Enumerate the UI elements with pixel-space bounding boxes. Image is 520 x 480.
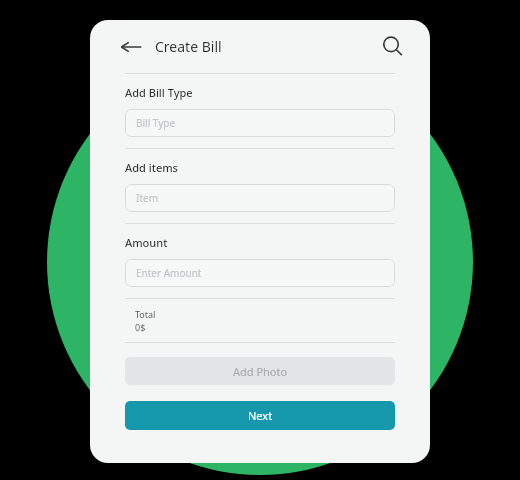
staticText: Add items xyxy=(125,160,178,175)
staticText: Amount xyxy=(125,235,168,250)
staticText: Add Photo xyxy=(233,364,288,379)
button[interactable]: Add Photo xyxy=(125,357,395,385)
button[interactable]: Item xyxy=(125,184,395,212)
button[interactable]: Next xyxy=(125,401,395,430)
button[interactable]: Search xyxy=(378,32,408,62)
staticText: Enter Amount xyxy=(136,266,202,280)
staticText: Create Bill xyxy=(155,37,222,56)
staticText: Total xyxy=(135,308,156,320)
staticText: Next xyxy=(248,408,273,423)
staticText: Bill Type xyxy=(136,116,176,130)
button[interactable]: Enter Amount xyxy=(125,259,395,287)
button[interactable]: Bill Type xyxy=(125,109,395,137)
button[interactable]: Back xyxy=(118,34,144,60)
staticText: 0$ xyxy=(135,321,146,333)
staticText: Add Bill Type xyxy=(125,85,193,100)
staticText: Item xyxy=(136,191,158,205)
